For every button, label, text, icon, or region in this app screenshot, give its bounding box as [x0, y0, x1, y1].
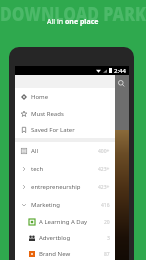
staticText: All — [31, 147, 98, 155]
staticText: 416 — [101, 202, 110, 209]
staticText: A Learning A Day — [39, 218, 104, 226]
button[interactable]: Must Reads — [15, 105, 115, 122]
button[interactable]: Home — [15, 88, 115, 105]
button[interactable]: Advertblog — [15, 230, 115, 246]
button[interactable]: Brand New — [15, 246, 115, 260]
button[interactable]: Saved For Later — [15, 122, 115, 138]
staticText: Saved For Later — [31, 126, 75, 134]
button[interactable]: Search — [117, 79, 126, 88]
staticText: entrepreneurship — [31, 183, 98, 191]
staticText: 3 — [107, 235, 110, 242]
button[interactable]: entrepreneurship — [15, 178, 115, 196]
staticText: 423+ — [98, 184, 110, 191]
staticText: Must Reads — [31, 110, 64, 118]
staticText: Marketing — [31, 201, 101, 209]
staticText: 87 — [104, 251, 110, 258]
staticText: 2:44 — [114, 67, 126, 75]
staticText: All in — [47, 17, 65, 27]
staticText: 400+ — [98, 148, 110, 155]
button[interactable]: All — [15, 142, 115, 160]
staticText: 20 — [104, 219, 110, 226]
staticText: Advertblog — [39, 234, 107, 242]
button[interactable]: Marketing — [15, 196, 115, 214]
button[interactable]: tech — [15, 160, 115, 178]
staticText: Home — [31, 93, 49, 101]
staticText: tech — [31, 165, 98, 173]
staticText: DOWNLOAD PARK — [0, 0, 146, 27]
staticText: one place — [65, 17, 99, 27]
button[interactable]: A Learning A Day — [15, 214, 115, 230]
staticText: 423+ — [98, 166, 110, 173]
staticText: Brand New — [39, 250, 104, 258]
